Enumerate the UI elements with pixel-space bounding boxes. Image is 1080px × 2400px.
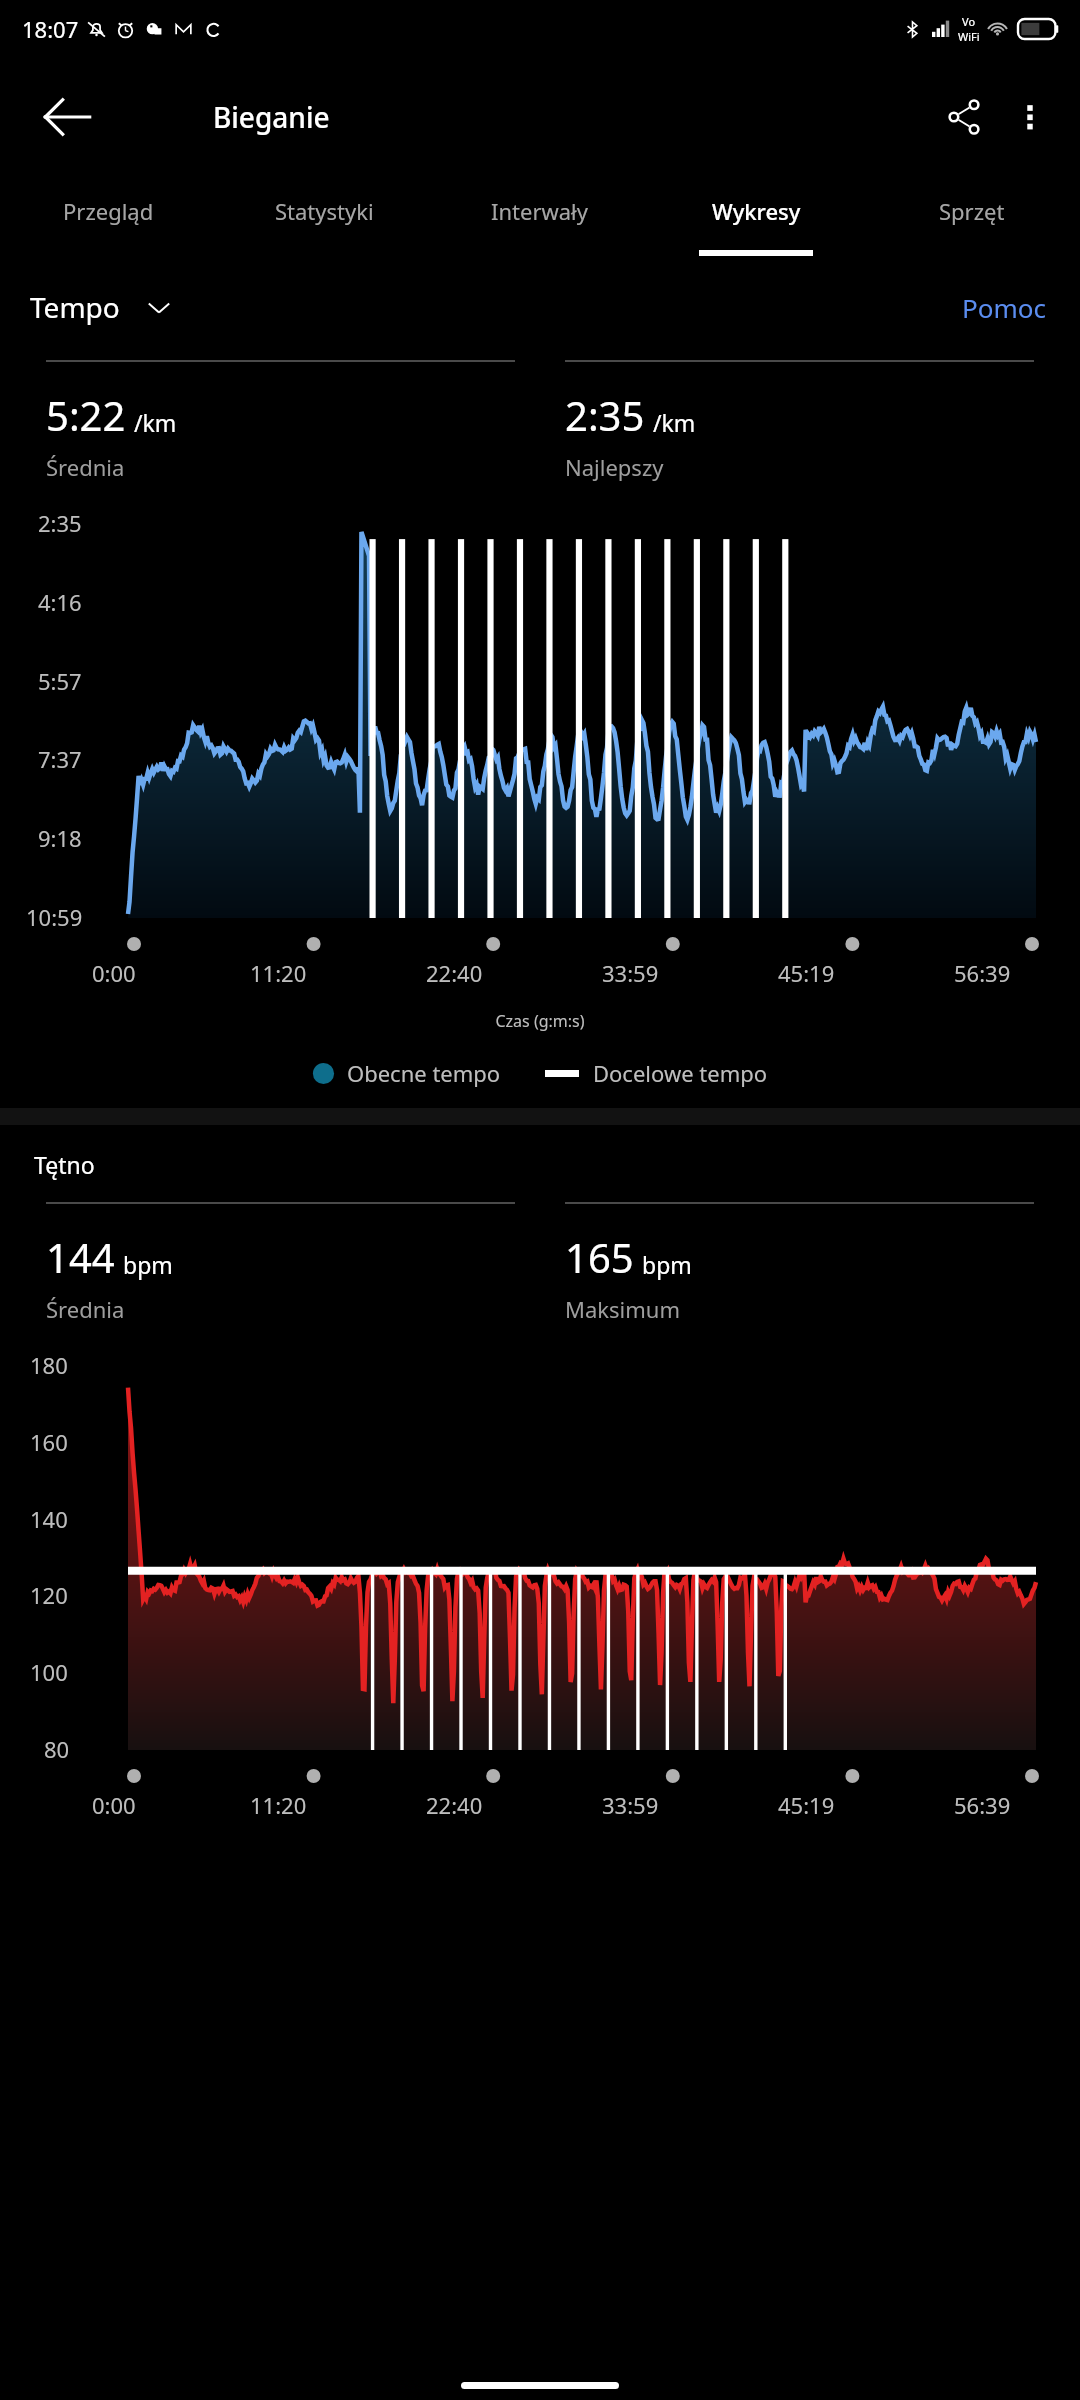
button[interactable]: More options — [1000, 87, 1060, 147]
staticText: 10:59 — [26, 902, 83, 932]
staticText: 45:19 — [778, 1790, 835, 1820]
button[interactable]: Przegląd — [0, 176, 216, 270]
staticText: 18:07 — [22, 14, 79, 44]
staticText: 0:00 — [92, 1790, 136, 1820]
button[interactable]: Sprzęt — [864, 176, 1080, 270]
staticText: 5:57 — [38, 666, 82, 696]
staticText: Tętno — [34, 1149, 95, 1180]
staticText: Bieganie — [213, 98, 330, 136]
staticText: Obecne tempo — [347, 1058, 501, 1088]
staticText: Średnia — [46, 452, 125, 482]
staticText: bpm — [642, 1249, 692, 1280]
staticText: 2:35 — [38, 508, 82, 538]
button[interactable]: Tempo — [30, 288, 174, 326]
staticText: 2:35 — [565, 388, 645, 442]
staticText: Najlepszy — [565, 452, 664, 482]
staticText: 80 — [44, 1734, 70, 1764]
staticText: Wykresy — [712, 196, 801, 226]
staticText: 7:37 — [38, 744, 82, 774]
staticText: Docelowe tempo — [593, 1058, 768, 1088]
staticText: 22:40 — [426, 958, 483, 988]
staticText: 9:18 — [38, 823, 82, 853]
staticText: 120 — [30, 1580, 68, 1610]
staticText: 33:59 — [602, 1790, 659, 1820]
staticText: 180 — [30, 1350, 68, 1380]
staticText: Vo — [962, 14, 976, 29]
staticText: /km — [134, 407, 177, 438]
staticText: 4:16 — [38, 587, 82, 617]
staticText: 33:59 — [602, 958, 659, 988]
staticText: Czas (g:m:s) — [0, 1010, 1080, 1032]
staticText: 22:40 — [426, 1790, 483, 1820]
staticText: 0:00 — [92, 958, 136, 988]
staticText: bpm — [123, 1249, 173, 1280]
button[interactable]: Statystyki — [216, 176, 432, 270]
staticText: /km — [653, 407, 696, 438]
button[interactable]: Share — [934, 87, 994, 147]
staticText: 11:20 — [250, 1790, 307, 1820]
staticText: 11:20 — [250, 958, 307, 988]
staticText: Średnia — [46, 1294, 125, 1324]
staticText: Przegląd — [63, 196, 154, 226]
staticText: 45:19 — [778, 958, 835, 988]
staticText: 165 — [565, 1230, 634, 1284]
staticText: Statystyki — [275, 196, 374, 226]
staticText: 140 — [30, 1504, 68, 1534]
staticText: WiFi — [958, 29, 980, 44]
staticText: 160 — [30, 1427, 68, 1457]
button[interactable]: Back — [40, 90, 94, 144]
staticText: Tempo — [30, 288, 120, 326]
staticText: 56:39 — [954, 1790, 1011, 1820]
staticText: Interwały — [491, 196, 589, 226]
button[interactable]: Interwały — [432, 176, 648, 270]
staticText: 5:22 — [46, 388, 126, 442]
staticText: 100 — [30, 1657, 68, 1687]
button[interactable]: Pomoc — [962, 290, 1046, 325]
staticText: 56:39 — [954, 958, 1011, 988]
staticText: Sprzęt — [939, 196, 1005, 226]
staticText: Maksimum — [565, 1294, 680, 1324]
staticText: Pomoc — [962, 290, 1046, 325]
staticText: 144 — [46, 1230, 115, 1284]
button[interactable]: Wykresy — [648, 176, 864, 270]
